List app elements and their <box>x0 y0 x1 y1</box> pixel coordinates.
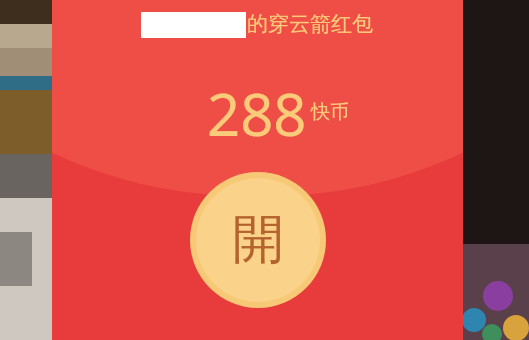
staticText: 288 <box>207 74 307 153</box>
button[interactable]: 开红包 <box>190 172 326 308</box>
staticText: 快币 <box>311 100 349 124</box>
staticText: 開 <box>232 207 284 273</box>
staticText: 的穿云箭红包 <box>247 11 373 37</box>
